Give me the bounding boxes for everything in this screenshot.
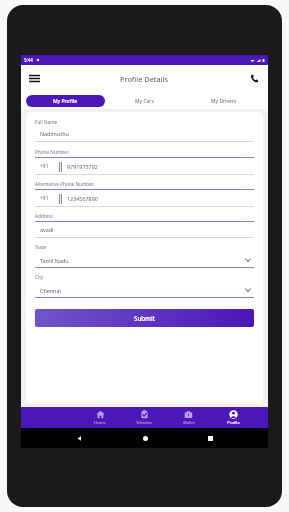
staticText: Tamil Nadu [40,257,69,264]
staticText: +91 [40,163,49,170]
button[interactable]: Profile [211,407,256,428]
button[interactable]: My Profile [26,95,105,107]
staticText: My Cars [135,98,154,105]
staticText: Wallet [183,420,195,426]
button[interactable]: Vehicles [122,407,166,428]
other: Select city [244,286,252,294]
button[interactable]: Tamil Nadu [35,256,254,264]
staticText: Chennai [40,287,61,294]
button[interactable]: Submit [35,309,254,327]
button[interactable]: Wallet [166,407,211,428]
button[interactable]: My Cars [105,95,184,107]
staticText: Vehicles [136,420,152,426]
staticText: My Drivers [211,98,237,105]
staticText: Address [35,213,53,219]
staticText: 5:44 [24,57,33,63]
staticText: +91 [40,195,49,202]
staticText: Phone Number [35,149,69,155]
button[interactable]: Recent apps [203,431,217,445]
staticText: 1234567890 [67,195,98,202]
button[interactable]: Chennai [35,286,254,294]
staticText: Profile [227,420,240,426]
staticText: Full Name [35,119,58,125]
button[interactable]: Open navigation menu [26,70,43,87]
staticText: Profile Details [120,74,169,84]
staticText: Home [94,420,106,426]
button[interactable]: Home [78,407,122,428]
other: Select state [244,256,252,264]
button[interactable]: Home [138,431,152,445]
button[interactable]: My Drivers [184,95,263,107]
staticText: Submit [134,314,156,322]
button[interactable]: Call [246,70,263,87]
staticText: Alternative Phone Number [35,181,94,187]
staticText: My Profile [53,98,78,105]
staticText: Nadimuthu [40,130,69,137]
staticText: 9791973792 [67,163,98,170]
staticText: avadi [40,226,54,233]
staticText: City [35,274,44,280]
button[interactable]: Back [72,431,86,445]
staticText: State [35,244,47,250]
